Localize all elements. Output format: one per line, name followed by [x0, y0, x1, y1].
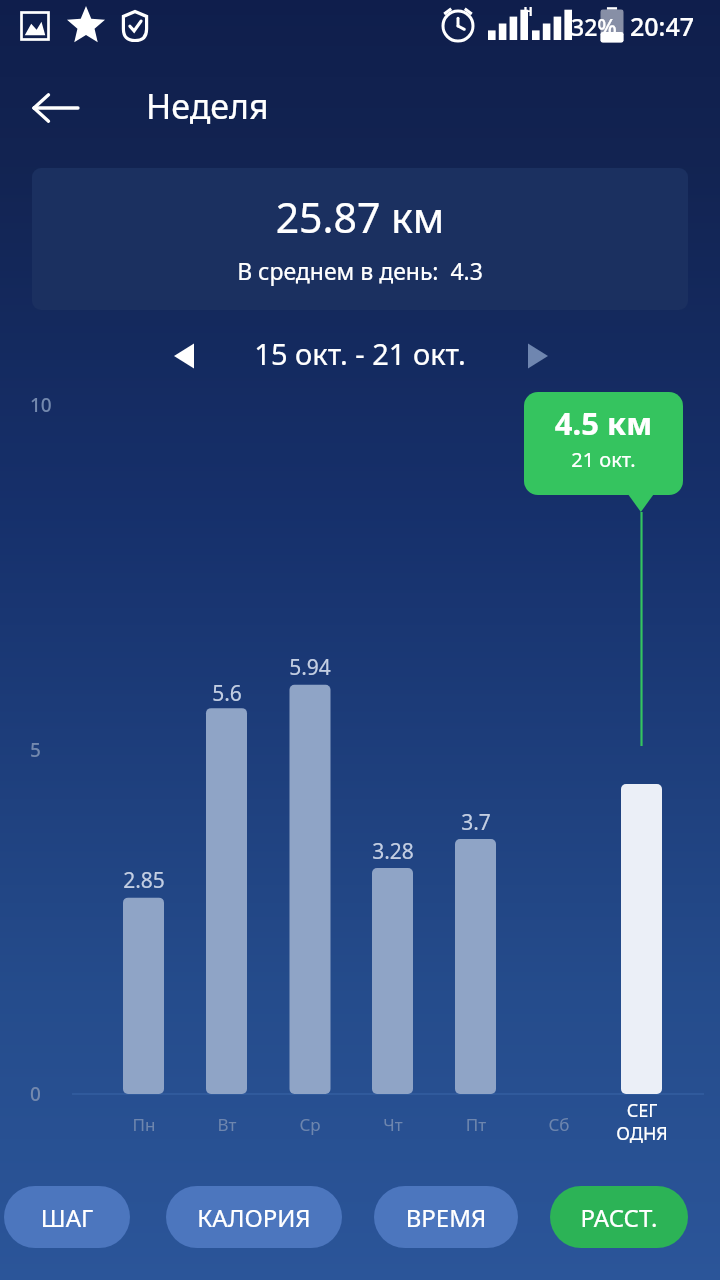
button[interactable]: КАЛОРИЯ — [166, 1186, 342, 1248]
staticText: Ср — [260, 1113, 360, 1136]
staticText: 2.85 — [94, 866, 194, 895]
staticText: 20:47 — [630, 9, 716, 43]
staticText: 3.28 — [343, 837, 443, 866]
staticText: Неделя — [146, 83, 466, 129]
staticText: 3.7 — [426, 808, 526, 837]
button[interactable]: Back — [20, 72, 92, 144]
staticText: 5 — [30, 737, 70, 763]
staticText: 25.87 км — [32, 189, 688, 245]
staticText: 5.6 — [177, 679, 277, 708]
staticText: ВРЕМЯ — [374, 1201, 518, 1234]
staticText: 5.94 — [260, 653, 360, 682]
button[interactable]: Next week — [512, 330, 572, 382]
staticText: 32% — [565, 11, 623, 42]
button[interactable]: РАССТ. — [550, 1186, 688, 1248]
button[interactable]: ВРЕМЯ — [374, 1186, 518, 1248]
staticText: В среднем в день: 4.3 — [32, 255, 688, 286]
button[interactable]: 25.87 км — [32, 168, 688, 310]
staticText: Чт — [343, 1113, 443, 1136]
staticText: H — [518, 3, 538, 19]
staticText: СЕГ ОДНЯ — [592, 1098, 692, 1145]
staticText: РАССТ. — [550, 1201, 688, 1234]
staticText: 15 окт. - 21 окт. — [200, 334, 520, 373]
staticText: Вт — [177, 1113, 277, 1136]
button[interactable]: ШАГ — [4, 1186, 130, 1248]
staticText: 4.5 км — [524, 402, 683, 444]
staticText: КАЛОРИЯ — [166, 1201, 342, 1234]
staticText: Сб — [509, 1113, 609, 1136]
staticText: 21 окт. — [524, 446, 683, 473]
staticText: 0 — [30, 1081, 70, 1107]
staticText: ШАГ — [4, 1201, 130, 1234]
staticText: Пт — [426, 1113, 526, 1136]
staticText: Пн — [94, 1113, 194, 1136]
button[interactable]: Previous week — [150, 330, 210, 382]
staticText: 10 — [30, 392, 70, 418]
